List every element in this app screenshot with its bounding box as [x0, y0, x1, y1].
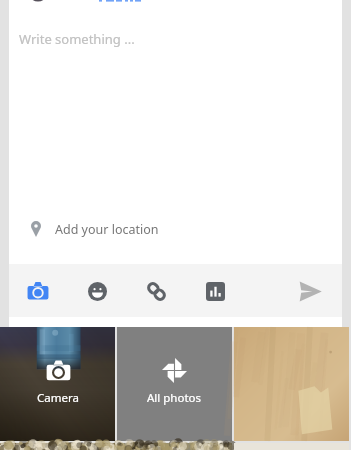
- staticText: Write something ...: [19, 30, 135, 48]
- button[interactable]: Add mood: [79, 273, 115, 309]
- button[interactable]: Add photo: [20, 273, 56, 309]
- button[interactable]: [117, 443, 232, 450]
- staticText: All photos: [147, 390, 202, 406]
- button[interactable]: Create poll: [197, 273, 233, 309]
- button[interactable]: Insert link: [138, 273, 174, 309]
- staticText: Add your location: [55, 221, 159, 238]
- button[interactable]: Add your location: [9, 211, 342, 247]
- button[interactable]: Send: [292, 273, 328, 309]
- button[interactable]: [0, 443, 115, 450]
- staticText: Camera: [37, 390, 79, 406]
- button[interactable]: All photos: [117, 327, 232, 441]
- button[interactable]: Camera: [0, 327, 115, 441]
- button[interactable]: [234, 327, 349, 441]
